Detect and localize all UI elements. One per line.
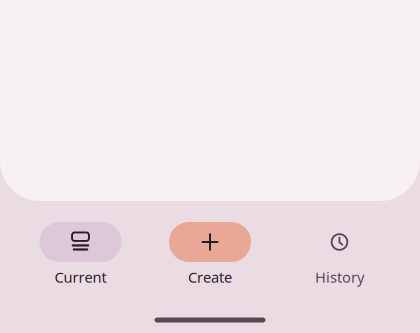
staticText: Create <box>188 267 232 287</box>
button[interactable]: History <box>280 222 398 284</box>
button[interactable]: Create <box>151 222 269 284</box>
staticText: History <box>315 267 364 287</box>
staticText: Current <box>54 267 106 287</box>
button[interactable]: Current <box>21 222 139 284</box>
